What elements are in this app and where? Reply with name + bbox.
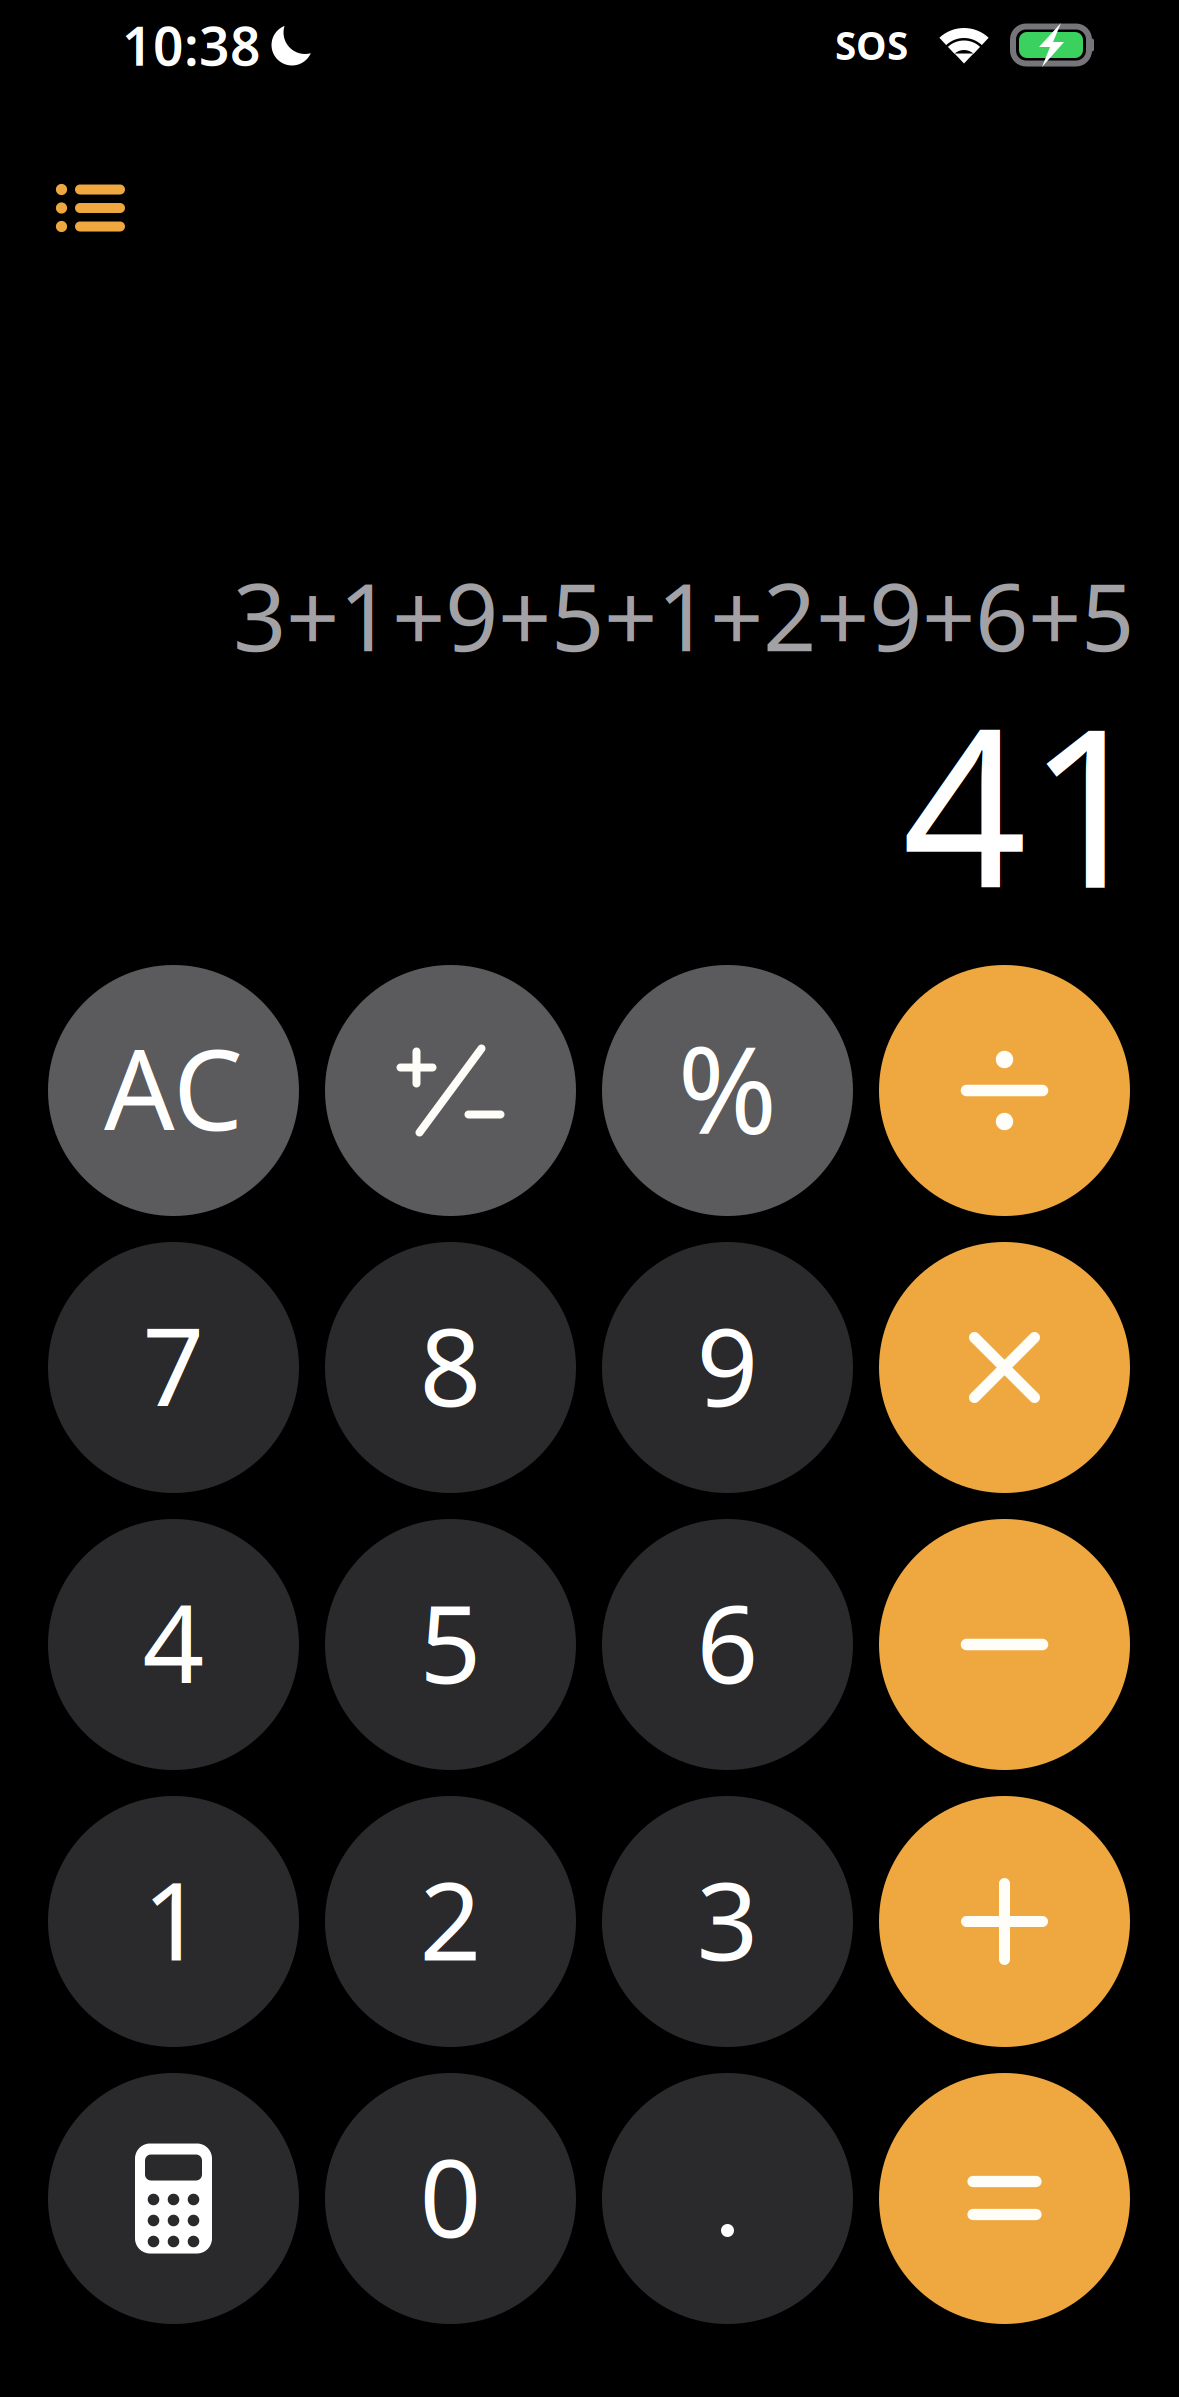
staticText: 8: [419, 1293, 481, 1436]
button[interactable]: 9: [602, 1242, 853, 1493]
button[interactable]: Decimal point: [602, 2073, 853, 2324]
button[interactable]: 2: [325, 1796, 576, 2047]
staticText: 3: [696, 1847, 758, 1990]
staticText: 2: [419, 1847, 481, 1990]
button[interactable]: 4: [48, 1519, 299, 1770]
button[interactable]: Percent: [602, 965, 853, 1216]
button[interactable]: Divide: [879, 965, 1130, 1216]
button[interactable]: Equals: [879, 2073, 1130, 2324]
button[interactable]: Plus Minus: [325, 965, 576, 1216]
staticText: 41: [902, 658, 1152, 948]
button[interactable]: All Clear: [48, 965, 299, 1216]
button[interactable]: 3: [602, 1796, 853, 2047]
button[interactable]: History: [32, 160, 155, 257]
button[interactable]: 0: [325, 2073, 576, 2324]
button[interactable]: Minus: [879, 1519, 1130, 1770]
staticText: 0: [419, 2124, 481, 2267]
button[interactable]: Plus: [879, 1796, 1130, 2047]
button[interactable]: 1: [48, 1796, 299, 2047]
button[interactable]: 5: [325, 1519, 576, 1770]
button[interactable]: Calculator: [48, 2073, 299, 2324]
button[interactable]: 8: [325, 1242, 576, 1493]
button[interactable]: 7: [48, 1242, 299, 1493]
staticText: 7: [142, 1293, 204, 1436]
button[interactable]: 6: [602, 1519, 853, 1770]
staticText: 9: [696, 1293, 758, 1436]
button[interactable]: Multiply: [879, 1242, 1130, 1493]
staticText: 3+1+9+5+1+2+9+6+5: [233, 553, 1134, 677]
staticText: 6: [696, 1570, 758, 1713]
staticText: %: [677, 1008, 777, 1167]
staticText: 10:38: [122, 10, 261, 80]
staticText: SOS: [835, 19, 908, 71]
staticText: 4: [142, 1570, 204, 1713]
staticText: AC: [104, 1014, 243, 1161]
staticText: 1: [142, 1847, 204, 1990]
staticText: 5: [419, 1570, 481, 1713]
